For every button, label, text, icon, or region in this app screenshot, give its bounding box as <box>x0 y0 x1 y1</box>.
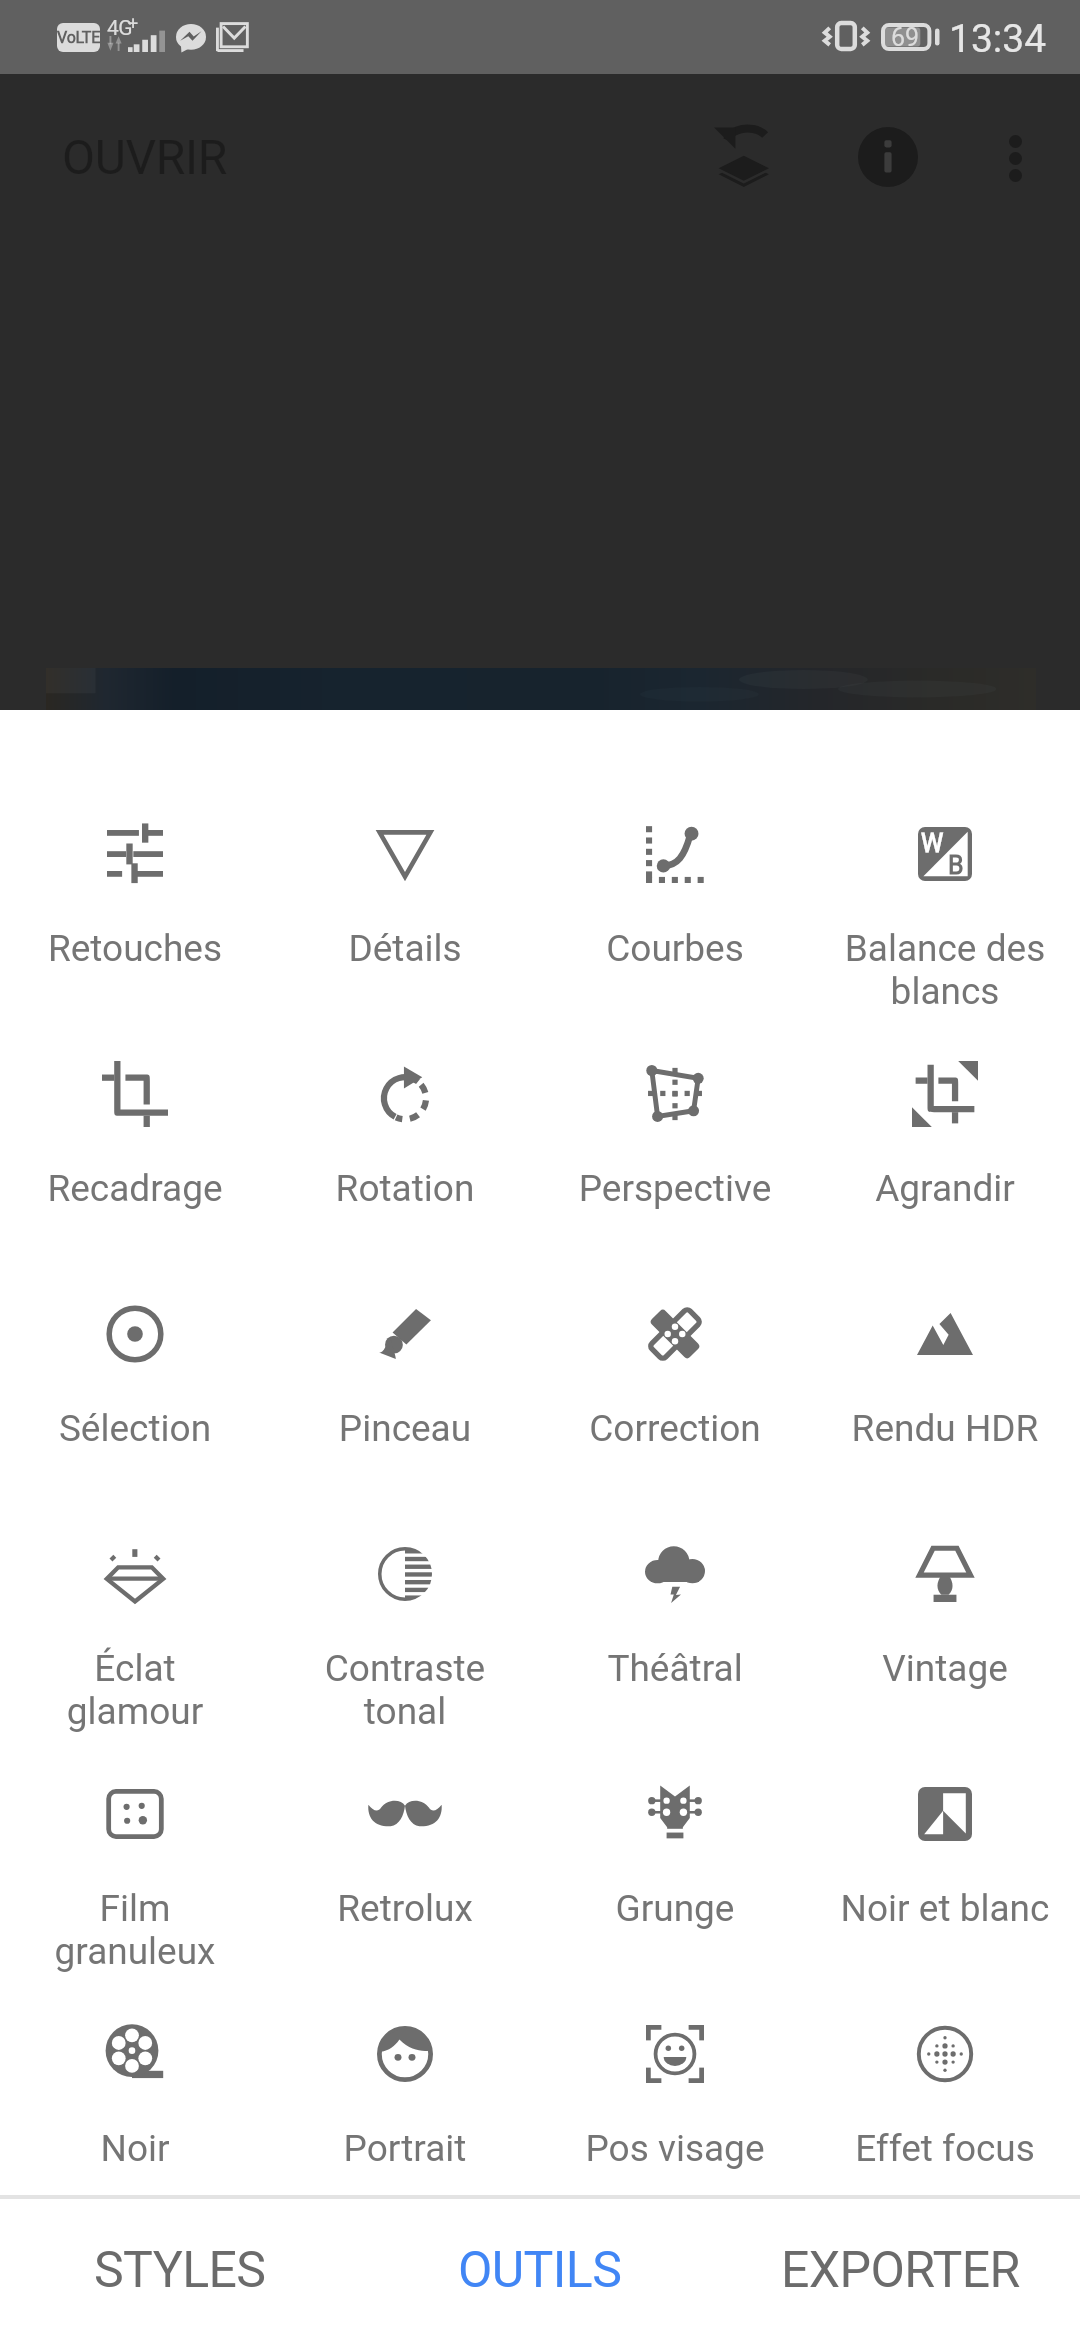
staticText: Éclat glamour <box>27 1647 243 1733</box>
button[interactable]: Perspective <box>540 950 810 1190</box>
staticText: Retouches <box>27 927 243 970</box>
staticText: EXPORTER <box>781 2241 1020 2300</box>
staticText: Perspective <box>567 1167 783 1210</box>
staticText: Rotation <box>297 1167 513 1210</box>
staticText: B <box>948 851 964 880</box>
staticText: Effet focus <box>837 2127 1053 2170</box>
button[interactable]: Courbes <box>540 710 810 950</box>
button[interactable]: Éclat glamour <box>0 1430 270 1670</box>
button[interactable]: Théâtral <box>540 1430 810 1670</box>
staticText: Film granuleux <box>27 1887 243 1973</box>
staticText: Correction <box>567 1407 783 1450</box>
button[interactable]: Détails <box>270 710 540 950</box>
staticText: Noir <box>27 2127 243 2170</box>
staticText: STYLES <box>94 2241 266 2300</box>
staticText: Détails <box>297 927 513 970</box>
button[interactable]: Portrait <box>270 1910 540 2150</box>
button[interactable]: W <box>810 710 1080 950</box>
staticText: VoLTE <box>57 28 100 47</box>
staticText: OUVRIR <box>62 129 228 185</box>
staticText: Pos visage <box>567 2127 783 2170</box>
staticText: 13:34 <box>949 16 1047 62</box>
button[interactable]: OUTILS <box>360 2198 720 2340</box>
button[interactable]: Rendu HDR <box>810 1190 1080 1430</box>
button[interactable]: Info <box>832 101 944 213</box>
staticText: Théâtral <box>567 1647 783 1690</box>
staticText: Courbes <box>567 927 783 970</box>
staticText: Sélection <box>27 1407 243 1450</box>
button[interactable]: OUVRIR <box>30 100 260 212</box>
button[interactable]: Undo / revert stack <box>685 100 797 212</box>
button[interactable]: Film granuleux <box>0 1670 270 1910</box>
staticText: Balance des blancs <box>837 927 1053 1013</box>
button[interactable]: Recadrage <box>0 950 270 1190</box>
staticText: Recadrage <box>27 1167 243 1210</box>
staticText: Retrolux <box>297 1887 513 1930</box>
button[interactable]: Agrandir <box>810 950 1080 1190</box>
staticText: Pinceau <box>297 1407 513 1450</box>
staticText: Agrandir <box>837 1167 1053 1210</box>
staticText: Contraste tonal <box>297 1647 513 1733</box>
button[interactable]: Retrolux <box>270 1670 540 1910</box>
button[interactable]: Pinceau <box>270 1190 540 1430</box>
staticText: Portrait <box>297 2127 513 2170</box>
button[interactable]: Noir <box>0 1910 270 2150</box>
staticText: OUTILS <box>458 2241 622 2300</box>
staticText: Rendu HDR <box>837 1407 1053 1450</box>
staticText: W <box>921 829 944 858</box>
button[interactable]: Grunge <box>540 1670 810 1910</box>
button[interactable]: Contraste tonal <box>270 1430 540 1670</box>
staticText: Noir et blanc <box>837 1887 1053 1930</box>
button[interactable]: Retouches <box>0 710 270 950</box>
button[interactable]: Noir et blanc <box>810 1670 1080 1910</box>
button[interactable]: Sélection <box>0 1190 270 1430</box>
staticText: 69 <box>891 23 920 52</box>
button[interactable]: Rotation <box>270 950 540 1190</box>
button[interactable]: EXPORTER <box>720 2198 1080 2340</box>
staticText: + <box>128 12 139 33</box>
staticText: Vintage <box>837 1647 1053 1690</box>
button[interactable]: Correction <box>540 1190 810 1430</box>
button[interactable]: Pos visage <box>540 1910 810 2150</box>
staticText: Grunge <box>567 1887 783 1930</box>
staticText: 4G <box>107 16 133 41</box>
button[interactable]: Vintage <box>810 1430 1080 1670</box>
button[interactable]: STYLES <box>0 2198 360 2340</box>
button[interactable]: Effet focus <box>810 1910 1080 2150</box>
